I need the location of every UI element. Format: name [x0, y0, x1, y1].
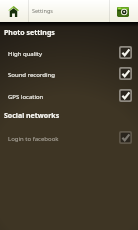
button[interactable]: GPS location [0, 85, 138, 105]
staticText: Photo settings [4, 28, 55, 38]
staticText: Settings [32, 7, 53, 14]
staticText: GPS location [8, 93, 44, 101]
button[interactable]: Login to facebook [0, 127, 138, 147]
staticText: High quality [8, 50, 43, 58]
staticText: Login to facebook [8, 135, 59, 143]
button[interactable]: High quality [0, 42, 138, 62]
button[interactable]: Camera [110, 0, 138, 22]
staticText: Social networks [4, 111, 60, 121]
button[interactable]: Sound recording [0, 63, 138, 83]
staticText: Sound recording [8, 71, 55, 79]
button[interactable]: Home [0, 0, 28, 22]
